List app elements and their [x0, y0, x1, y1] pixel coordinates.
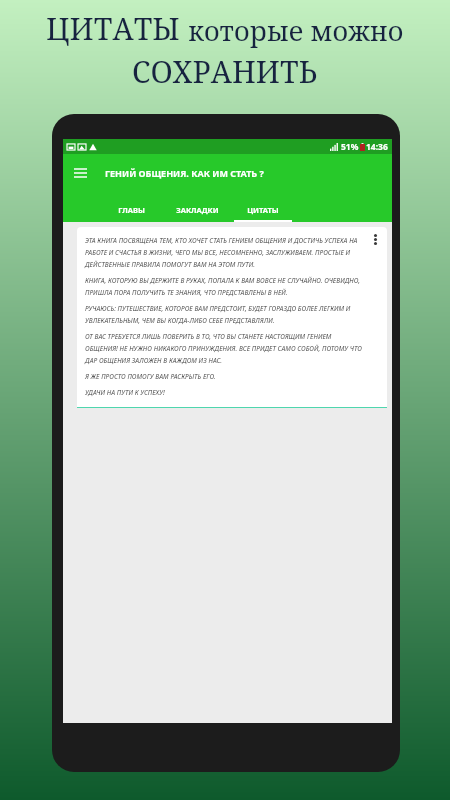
- button[interactable]: ЭТА КНИГА ПОСВЯЩЕНА ТЕМ, КТО ХОЧЕТ СТАТЬ…: [77, 227, 387, 408]
- button[interactable]: ЦИТАТЫ: [234, 192, 292, 222]
- staticText: 14:36: [366, 141, 388, 153]
- staticText: ГЛАВЫ: [118, 205, 145, 215]
- staticText: ГЕНИЙ ОБЩЕНИЯ. КАК ИМ СТАТЬ ?: [105, 167, 264, 179]
- staticText: ЦИТАТЫ: [247, 205, 279, 215]
- button[interactable]: ГЛАВЫ: [102, 192, 160, 222]
- staticText: ОТ ВАС ТРЕБУЕТСЯ ЛИШЬ ПОВЕРИТЬ В ТО, ЧТО…: [85, 332, 365, 365]
- staticText: Я ЖЕ ПРОСТО ПОМОГУ ВАМ РАСКРЫТЬ ЕГО.: [85, 372, 365, 381]
- button[interactable]: Menu: [63, 156, 97, 190]
- staticText: ЗАКЛАДКИ: [176, 205, 219, 215]
- staticText: ЭТА КНИГА ПОСВЯЩЕНА ТЕМ, КТО ХОЧЕТ СТАТЬ…: [85, 236, 365, 269]
- staticText: УДАЧИ НА ПУТИ К УСПЕХУ!: [85, 388, 365, 397]
- staticText: которые можно: [188, 12, 404, 49]
- button[interactable]: More options: [368, 232, 382, 246]
- staticText: СОХРАНИТЬ: [132, 51, 318, 92]
- button[interactable]: ЗАКЛАДКИ: [168, 192, 226, 222]
- staticText: 51%: [341, 141, 359, 153]
- staticText: РУЧАЮСЬ: ПУТЕШЕСТВИЕ, КОТОРОЕ ВАМ ПРЕДСТ…: [85, 304, 365, 325]
- staticText: ЦИТАТЫ: [46, 8, 188, 49]
- staticText: КНИГА, КОТОРУЮ ВЫ ДЕРЖИТЕ В РУКАХ, ПОПАЛ…: [85, 276, 365, 297]
